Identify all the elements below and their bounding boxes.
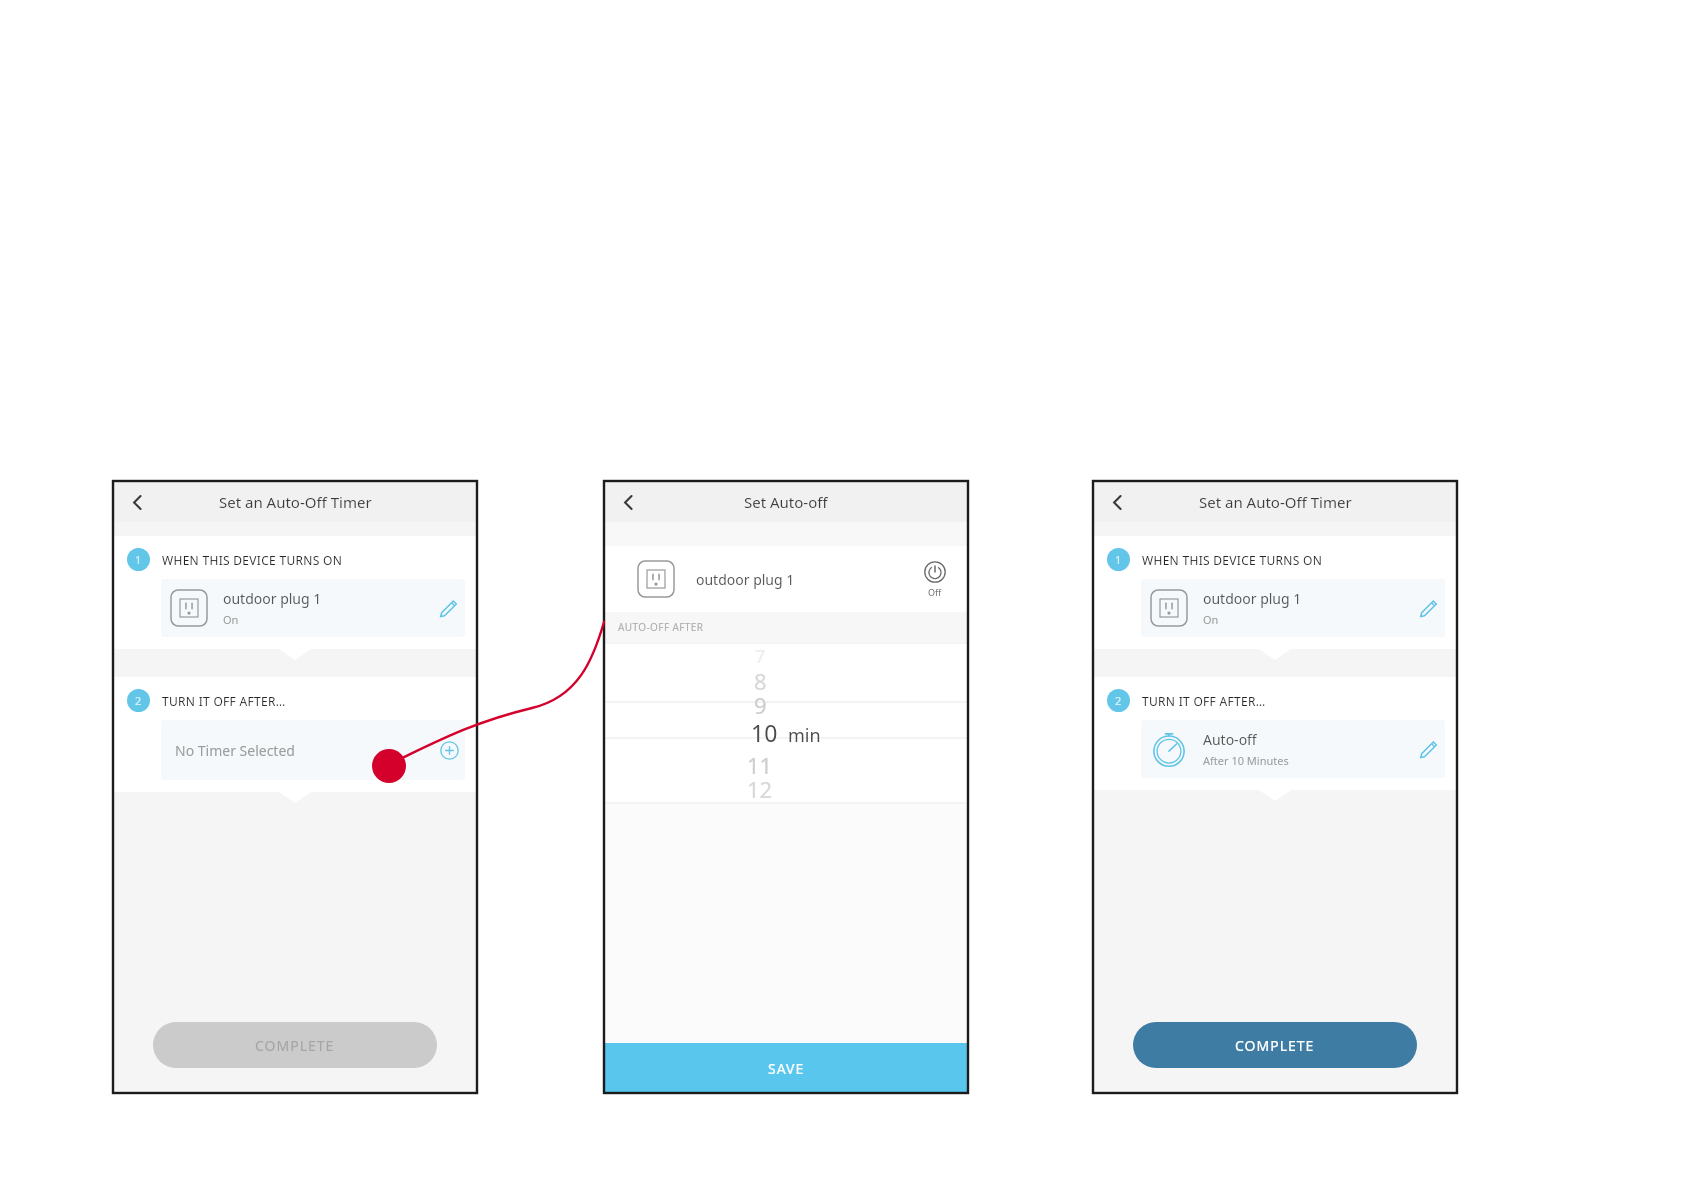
- button[interactable]: Power off: [924, 561, 946, 598]
- staticText: min: [788, 723, 821, 748]
- staticText: 11: [747, 750, 773, 774]
- staticText: 10: [751, 717, 778, 748]
- staticText: 8: [754, 666, 767, 690]
- button[interactable]: Back: [117, 482, 157, 522]
- staticText: TURN IT OFF AFTER…: [1142, 693, 1266, 709]
- staticText: 9: [754, 690, 767, 714]
- button[interactable]: No Timer Selected: [161, 720, 465, 780]
- staticText: 7: [755, 644, 766, 668]
- staticText: outdoor plug 1: [1203, 589, 1302, 608]
- staticText: AUTO-OFF AFTER: [618, 620, 704, 634]
- staticText: TURN IT OFF AFTER…: [162, 693, 286, 709]
- staticText: Off: [928, 586, 942, 598]
- staticText: Set Auto-off: [744, 492, 828, 512]
- button[interactable]: Back: [608, 482, 648, 522]
- staticText: 2: [135, 693, 142, 708]
- staticText: outdoor plug 1: [696, 570, 924, 589]
- button[interactable]: COMPLETE: [1133, 1022, 1417, 1068]
- button[interactable]: outdoor plug 1: [604, 546, 968, 612]
- button[interactable]: Edit: [431, 591, 465, 625]
- button[interactable]: Edit timer: [1411, 732, 1445, 766]
- staticText: 2: [1115, 693, 1122, 708]
- staticText: 13: [749, 798, 772, 804]
- button[interactable]: outdoor plug 1: [161, 579, 465, 637]
- staticText: outdoor plug 1: [223, 589, 322, 608]
- staticText: After 10 Minutes: [1203, 753, 1289, 768]
- staticText: Auto-off: [1203, 730, 1257, 749]
- button[interactable]: Edit: [1411, 591, 1445, 625]
- staticText: On: [1203, 612, 1219, 627]
- staticText: COMPLETE: [255, 1036, 335, 1055]
- button[interactable]: outdoor plug 1: [1141, 579, 1445, 637]
- staticText: No Timer Selected: [175, 741, 433, 760]
- staticText: Set an Auto-Off Timer: [219, 492, 372, 512]
- staticText: WHEN THIS DEVICE TURNS ON: [1142, 552, 1323, 568]
- staticText: SAVE: [768, 1059, 805, 1078]
- staticText: 1: [135, 552, 142, 567]
- staticText: 12: [747, 774, 773, 798]
- button[interactable]: Back: [1097, 482, 1137, 522]
- button[interactable]: SAVE: [604, 1043, 968, 1093]
- button[interactable]: COMPLETE: [153, 1022, 437, 1068]
- staticText: 1: [1115, 552, 1122, 567]
- staticText: Set an Auto-Off Timer: [1199, 492, 1352, 512]
- staticText: COMPLETE: [1235, 1036, 1315, 1055]
- staticText: WHEN THIS DEVICE TURNS ON: [162, 552, 343, 568]
- button[interactable]: Auto-off: [1141, 720, 1445, 778]
- button[interactable]: Add timer: [433, 734, 465, 766]
- staticText: On: [223, 612, 239, 627]
